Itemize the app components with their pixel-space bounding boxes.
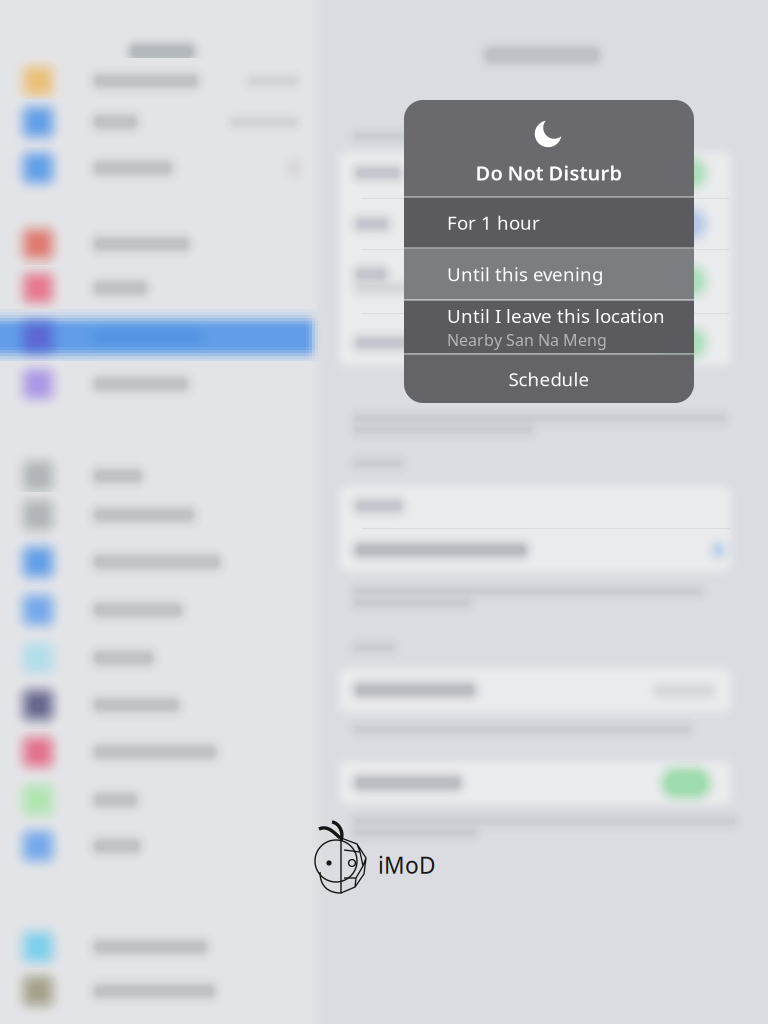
button[interactable]: Schedule (404, 354, 694, 403)
staticText: Until this evening (447, 262, 603, 286)
button[interactable] (0, 682, 324, 728)
button[interactable] (0, 777, 324, 823)
button[interactable] (0, 729, 324, 775)
staticText: Until I leave this location (447, 303, 665, 328)
staticText: Do Not Disturb (475, 159, 622, 186)
button[interactable] (0, 453, 324, 499)
button[interactable] (0, 361, 324, 407)
button[interactable] (0, 221, 324, 267)
staticText: Nearby San Na Meng (447, 329, 607, 350)
button[interactable] (0, 635, 324, 681)
button[interactable] (0, 309, 324, 365)
staticText: Schedule (508, 367, 589, 391)
button[interactable]: For 1 hour (404, 197, 694, 247)
button[interactable] (0, 145, 324, 191)
button[interactable] (0, 99, 324, 145)
button[interactable] (0, 539, 324, 585)
button[interactable] (0, 265, 324, 311)
button[interactable] (0, 587, 324, 633)
staticText: iMoD (378, 850, 436, 880)
button[interactable]: Until this evening (404, 248, 694, 299)
button[interactable] (0, 968, 324, 1014)
button[interactable] (0, 492, 324, 538)
button[interactable] (0, 924, 324, 970)
button[interactable] (0, 823, 324, 869)
staticText: For 1 hour (447, 210, 540, 235)
button[interactable]: Until I leave this location (404, 300, 694, 353)
button[interactable] (0, 58, 324, 104)
